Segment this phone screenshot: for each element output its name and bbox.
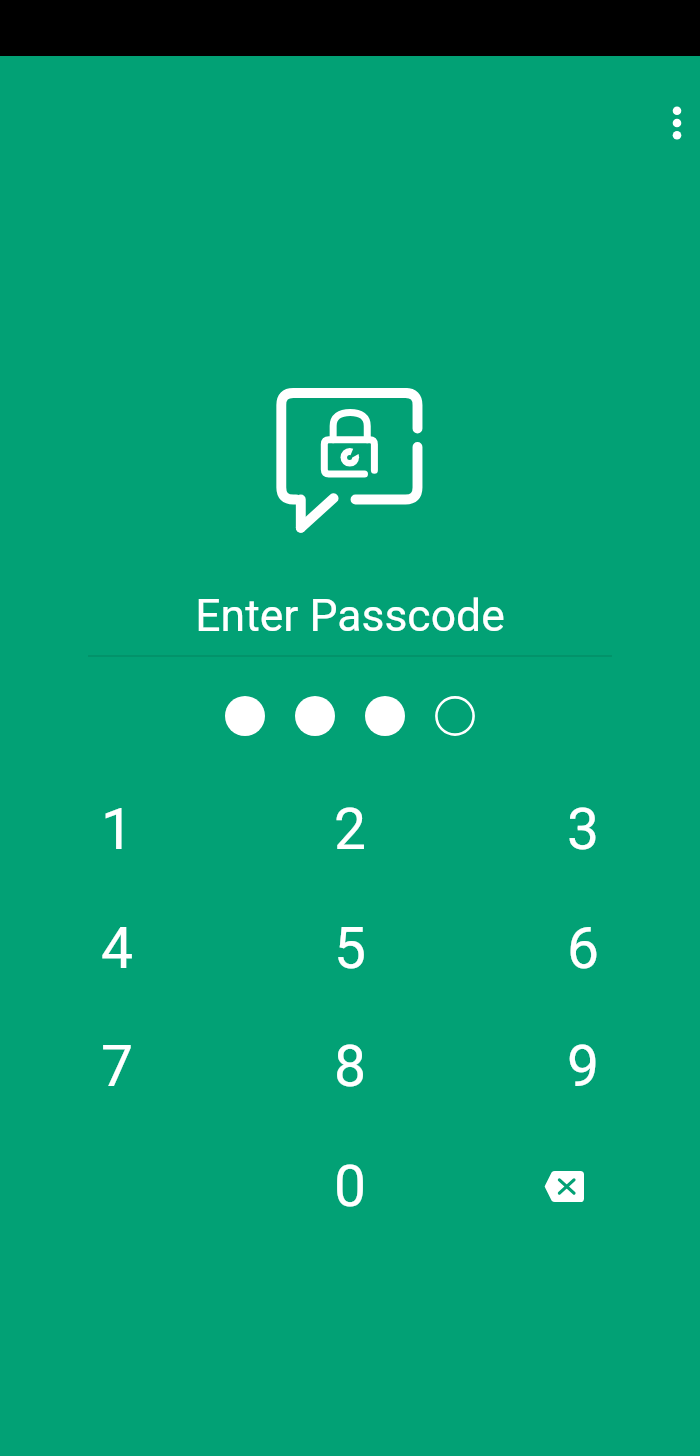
staticText: Enter Passcode [0, 590, 700, 642]
staticText: 2 [334, 796, 367, 863]
staticText: 3 [567, 796, 600, 863]
staticText: 8 [334, 1033, 367, 1100]
button[interactable]: 0 [291, 1127, 409, 1245]
staticText: 0 [334, 1153, 367, 1220]
staticText: 4 [101, 915, 134, 982]
button[interactable]: 2 [291, 770, 409, 888]
button[interactable]: 6 [524, 889, 642, 1007]
button[interactable]: 9 [524, 1007, 642, 1125]
button[interactable]: 7 [58, 1007, 176, 1125]
staticText: 9 [567, 1033, 600, 1100]
button[interactable]: 4 [58, 889, 176, 1007]
button[interactable]: 1 [58, 770, 176, 888]
staticText: 1 [101, 796, 134, 863]
button[interactable]: 5 [291, 889, 409, 1007]
staticText: 7 [101, 1033, 134, 1100]
button[interactable]: More options [648, 94, 700, 151]
button[interactable]: 3 [524, 770, 642, 888]
staticText: 6 [567, 915, 600, 982]
staticText: 5 [334, 915, 367, 982]
button[interactable]: Backspace [505, 1127, 623, 1245]
button[interactable]: 8 [291, 1007, 409, 1125]
